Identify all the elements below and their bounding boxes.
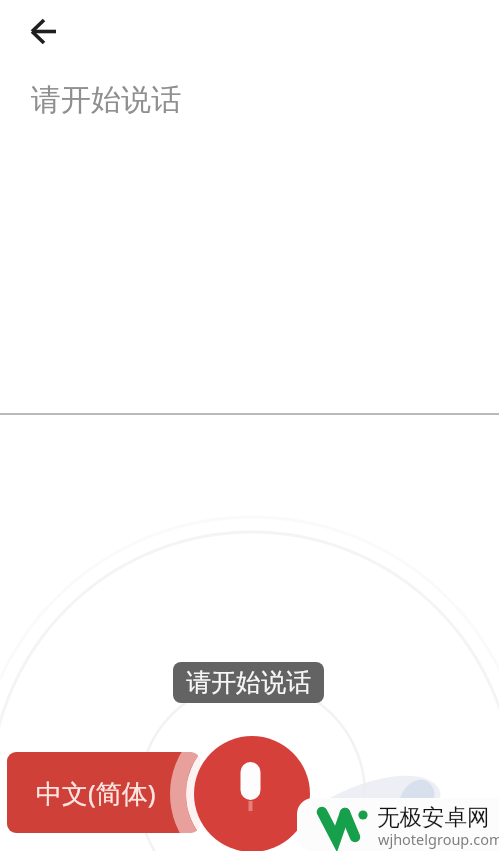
- staticText: wjhotelgroup.com: [378, 829, 499, 849]
- staticText: 请开始说话: [31, 81, 181, 119]
- button[interactable]: Back: [8, 7, 56, 55]
- staticText: 无极安卓网: [377, 803, 490, 831]
- staticText: 中文(简体): [36, 775, 156, 811]
- staticText: 请开始说话: [186, 667, 311, 698]
- button[interactable]: 中文(简体): [7, 752, 200, 833]
- button[interactable]: Microphone: [194, 736, 310, 851]
